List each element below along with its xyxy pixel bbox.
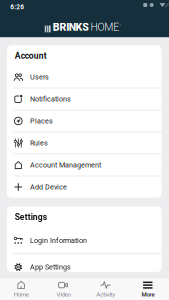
button[interactable]: Activity	[84, 277, 127, 298]
staticText: Account Management	[30, 161, 101, 169]
staticText: Video	[56, 291, 70, 298]
staticText: Account	[15, 51, 47, 61]
staticText: Add Device	[30, 183, 67, 191]
button[interactable]: Home	[0, 277, 42, 298]
button[interactable]: Account Management	[7, 154, 161, 176]
button[interactable]: Places	[7, 110, 161, 132]
button[interactable]: Add Device	[7, 176, 161, 198]
staticText: BRINKS	[53, 21, 89, 33]
staticText: Login Information	[30, 236, 87, 245]
button[interactable]: Rules	[7, 132, 161, 154]
button[interactable]: Notifications	[7, 88, 161, 110]
staticText: Notifications	[30, 95, 71, 103]
staticText: Activity	[96, 291, 115, 298]
button[interactable]: Video	[42, 277, 84, 298]
staticText: More	[141, 291, 154, 298]
staticText: Rules	[30, 139, 48, 147]
button[interactable]: Users	[7, 66, 161, 88]
staticText: 6:26	[10, 3, 24, 11]
staticText: Home	[14, 291, 29, 298]
button[interactable]: Login Information	[7, 227, 161, 253]
staticText: Users	[30, 73, 49, 81]
staticText: ™	[119, 24, 121, 28]
button[interactable]: App Settings	[7, 254, 161, 280]
staticText: App Settings	[30, 263, 71, 271]
staticText: HOME	[90, 21, 119, 33]
staticText: Places	[30, 117, 53, 125]
button[interactable]: More	[127, 278, 169, 298]
staticText: Settings	[15, 212, 47, 222]
